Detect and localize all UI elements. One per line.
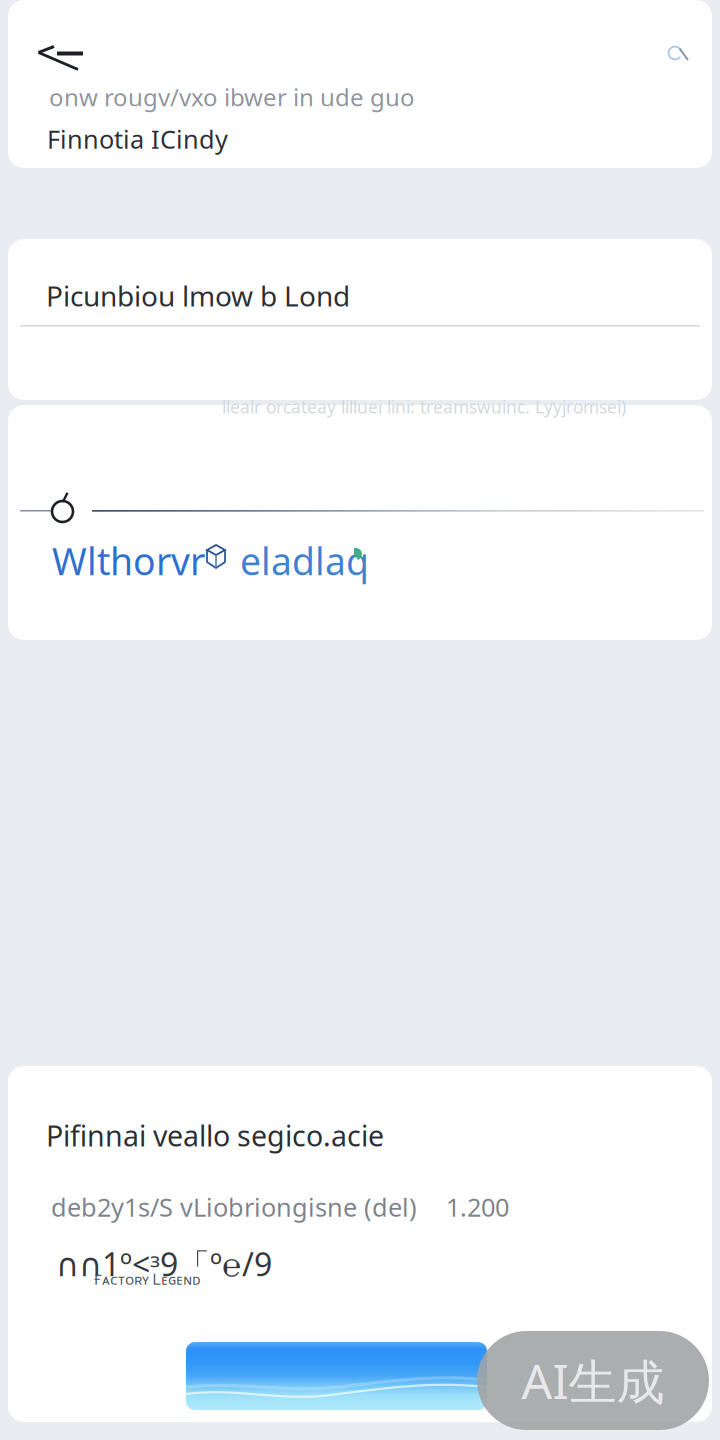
button[interactable]: Continue [186,1342,487,1410]
staticText: onw rougv/vxo ibwer in ude guo [49,81,415,113]
staticText: Finnotia ICindy [47,122,228,156]
staticText: AI生成 [521,1348,664,1413]
staticText: Ғᴀᴄᴛᴏʀʏ Ꮮᴇɢᴇɴᴅ [94,1269,201,1289]
staticText: 1.200 [446,1190,509,1224]
staticText: deb2y1s/S vLiobriongisne (del) [51,1190,417,1224]
staticText: Picunbiou lmow b Lond [46,277,350,314]
button[interactable]: Back [25,26,97,82]
staticText: Pifinnai veallo segico.acie [46,1116,384,1155]
staticText: ∩∩1º<ᶟ9「º℮/9 [56,1242,272,1286]
staticText: llealr orcateay lilluei lini: treamswuin… [222,395,626,419]
staticText: Wlthorvr [52,536,205,586]
button[interactable]: Search [653,30,705,78]
staticText: eladlaq [240,536,369,586]
